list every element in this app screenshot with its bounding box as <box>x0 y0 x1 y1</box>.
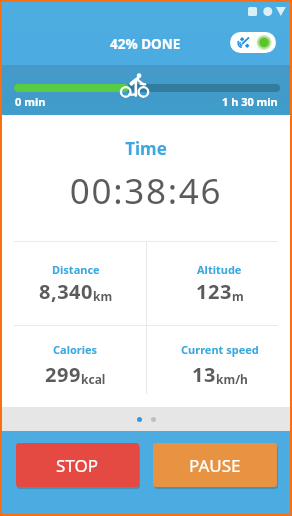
staticText: 8,340 <box>39 278 93 305</box>
button[interactable]: Current speed <box>146 326 290 403</box>
staticText: 123 <box>196 278 232 305</box>
staticText: Altitude <box>197 262 242 277</box>
button[interactable]: Distance <box>2 242 146 325</box>
staticText: STOP <box>56 454 99 477</box>
staticText: 299 <box>45 361 81 388</box>
staticText: Distance <box>52 262 100 277</box>
staticText: Calories <box>53 342 98 357</box>
staticText: km/h <box>216 371 248 387</box>
button[interactable]: Altitude <box>146 242 290 325</box>
button[interactable]: GPS toggle <box>230 32 276 53</box>
staticText: PAUSE <box>189 454 241 477</box>
staticText: km <box>93 288 113 304</box>
staticText: Current speed <box>181 342 259 357</box>
staticText: 1 h 30 min <box>222 94 278 109</box>
staticText: Time <box>2 137 290 160</box>
staticText: m <box>232 288 244 304</box>
staticText: 0 min <box>15 94 46 109</box>
button[interactable]: Calories <box>2 326 146 403</box>
staticText: 42% DONE <box>110 35 181 53</box>
button[interactable]: STOP <box>16 443 139 487</box>
staticText: kcal <box>81 371 106 387</box>
button[interactable]: PAUSE <box>153 443 277 487</box>
staticText: 13 <box>192 361 216 388</box>
staticText: 00:38:46 <box>2 167 290 215</box>
